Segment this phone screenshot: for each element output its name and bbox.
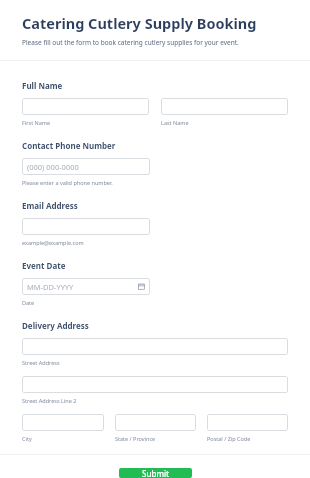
button[interactable]: Street Address Line 2	[22, 376, 288, 393]
button[interactable]: Event Date	[22, 278, 150, 295]
button[interactable]: Contact Phone Number	[22, 158, 150, 175]
button[interactable]: Email Address	[22, 218, 150, 235]
button[interactable]: Submit	[119, 468, 192, 478]
button[interactable]: Postal / Zip Code	[207, 414, 288, 431]
staticText: Contact Phone Number	[22, 140, 116, 151]
staticText: example@example.com	[22, 239, 84, 246]
staticText: Date	[22, 299, 35, 306]
staticText: Submit	[142, 468, 170, 478]
button[interactable]: Street Address	[22, 338, 288, 355]
button[interactable]: Last Name	[161, 98, 288, 115]
button[interactable]: City	[22, 414, 104, 431]
staticText: Catering Cutlery Supply Booking Form	[22, 13, 288, 33]
staticText: First Name	[22, 119, 51, 126]
staticText: Event Date	[22, 260, 66, 271]
staticText: Please enter a valid phone number.	[22, 179, 113, 186]
staticText: Street Address Line 2	[22, 397, 77, 404]
button[interactable]: State / Province	[115, 414, 196, 431]
staticText: City	[22, 435, 32, 442]
staticText: Street Address	[22, 359, 60, 366]
staticText: State / Province	[115, 435, 156, 442]
staticText: Delivery Address	[22, 320, 89, 331]
staticText: Full Name	[22, 80, 63, 91]
staticText: (000) 000-0000	[27, 162, 79, 172]
button[interactable]: First Name	[22, 98, 149, 115]
staticText: Last Name	[161, 119, 189, 126]
staticText: Postal / Zip Code	[207, 435, 251, 442]
staticText: Please fill out the form to book caterin…	[22, 38, 239, 47]
staticText: Email Address	[22, 200, 78, 211]
staticText: MM-DD-YYYY	[27, 282, 74, 292]
